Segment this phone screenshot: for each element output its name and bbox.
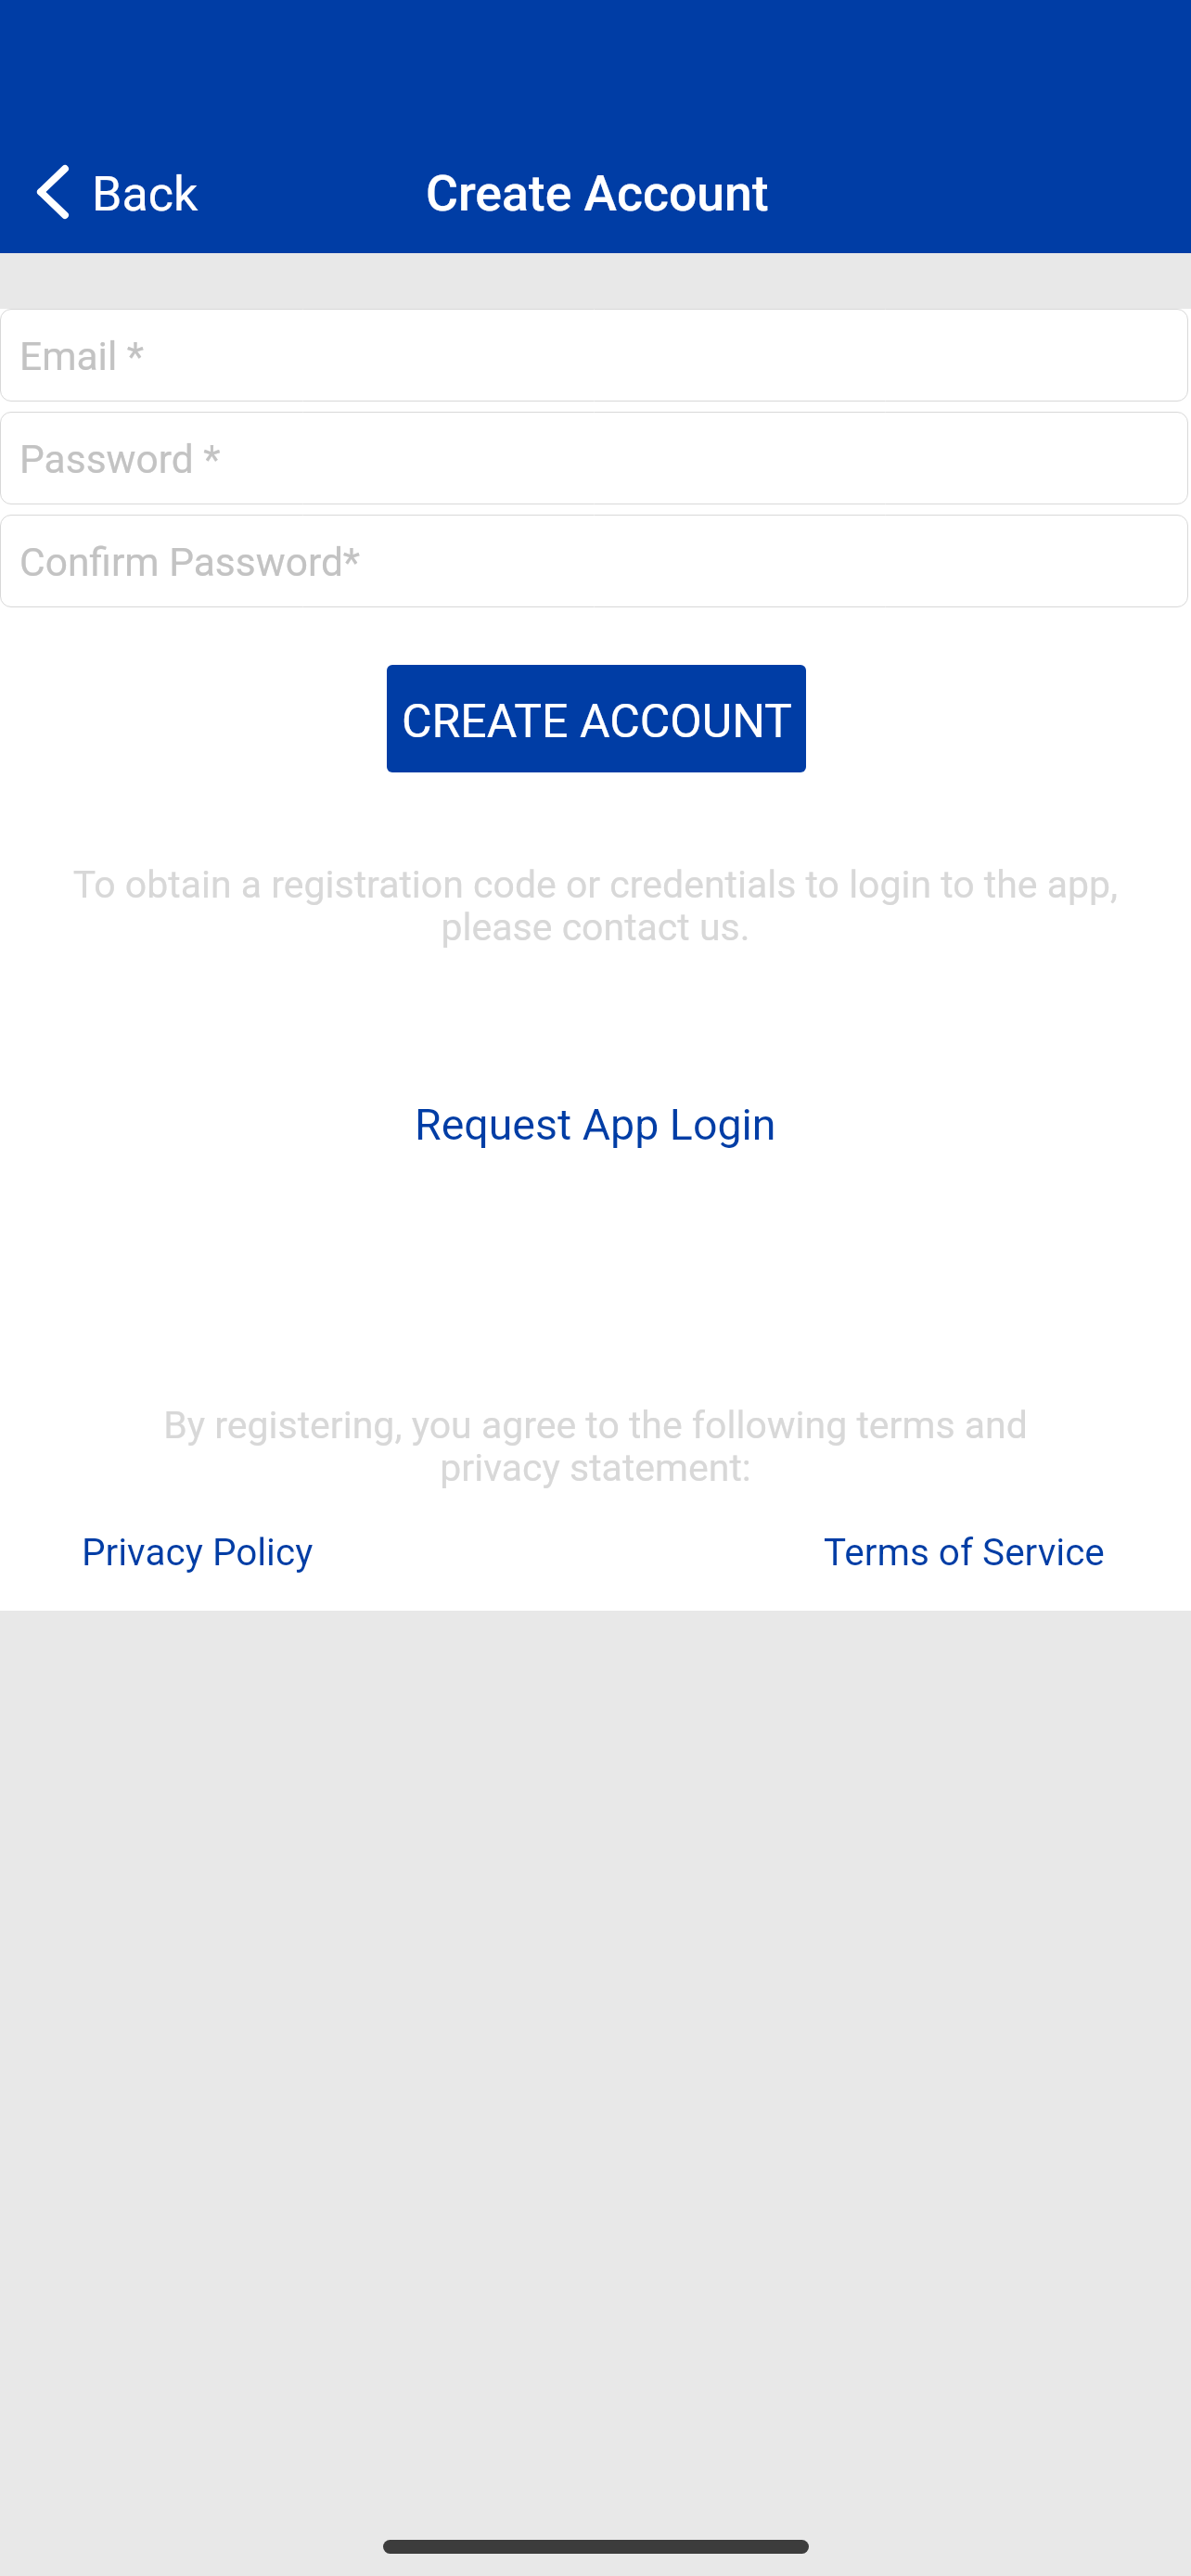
staticText: To obtain a registration code or credent… [67, 862, 1124, 950]
staticText: Back [92, 166, 198, 223]
button[interactable]: Privacy Policy [82, 1530, 314, 1574]
staticText: Password * [19, 437, 221, 483]
staticText: Create Account [426, 164, 769, 223]
button[interactable]: CREATE ACCOUNT [387, 665, 806, 772]
button[interactable]: Request App Login [392, 1089, 799, 1161]
staticText: By registering, you agree to the followi… [148, 1403, 1043, 1490]
staticText: Email * [19, 334, 145, 380]
staticText: Confirm Password* [19, 540, 361, 586]
button[interactable]: Email * [0, 309, 1188, 402]
staticText: Terms of Service [824, 1530, 1105, 1574]
staticText: Request App Login [415, 1100, 776, 1150]
button[interactable]: Confirm Password* [0, 515, 1188, 607]
staticText: Privacy Policy [82, 1530, 314, 1574]
button[interactable]: Back [7, 141, 217, 241]
button[interactable]: Terms of Service [824, 1530, 1105, 1574]
staticText: CREATE ACCOUNT [402, 695, 792, 749]
button[interactable]: Password * [0, 412, 1188, 504]
